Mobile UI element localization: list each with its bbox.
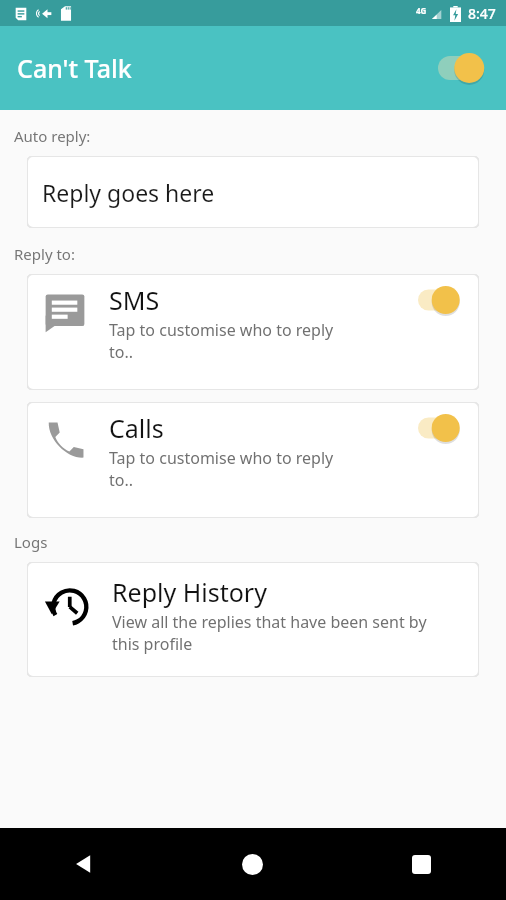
staticText: SMS [109, 283, 160, 317]
button[interactable]: SMS [27, 274, 479, 390]
button[interactable]: Back [0, 828, 168, 900]
button[interactable]: Reply goes here [27, 156, 479, 228]
staticText: Tap to customise who to reply to.. [109, 319, 334, 363]
button[interactable]: Home [168, 828, 337, 900]
button[interactable]: Toggle Calls [411, 406, 473, 450]
staticText: Can't Talk [17, 51, 132, 85]
button[interactable]: Toggle SMS [411, 278, 473, 322]
staticText: Tap to customise who to reply to.. [109, 447, 334, 491]
button[interactable]: Calls [27, 402, 479, 518]
staticText: Reply History [112, 575, 267, 609]
staticText: Reply to: [14, 244, 75, 264]
staticText: Logs [14, 532, 48, 552]
staticText: Reply goes here [42, 177, 215, 208]
staticText: Auto reply: [14, 126, 91, 146]
button[interactable]: Recent apps [337, 828, 506, 900]
button[interactable]: Toggle profile [432, 46, 496, 90]
staticText: 8:47 [468, 4, 496, 23]
staticText: Calls [109, 411, 164, 445]
button[interactable]: Reply History [27, 562, 479, 677]
staticText: 4G [416, 5, 427, 16]
staticText: View all the replies that have been sent… [112, 611, 427, 655]
